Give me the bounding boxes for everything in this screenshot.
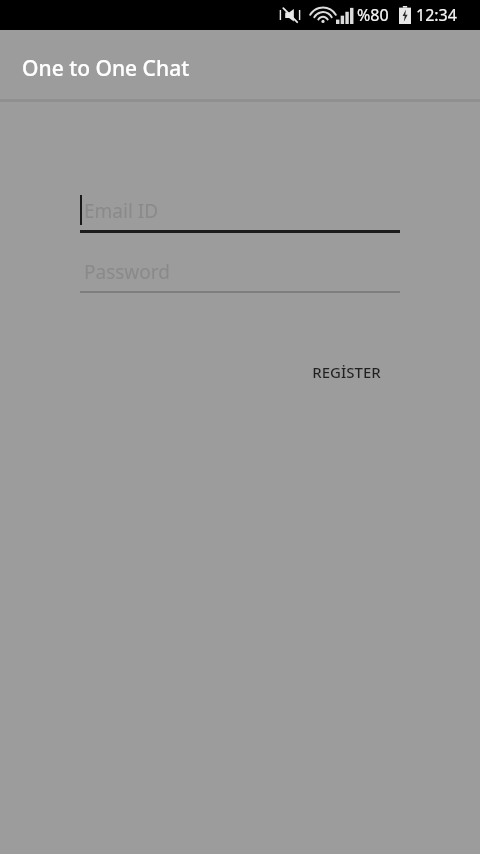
staticText: REGİSTER bbox=[312, 362, 381, 382]
staticText: Email ID bbox=[84, 198, 159, 224]
staticText: 12:34 bbox=[416, 4, 457, 26]
staticText: One to One Chat bbox=[22, 54, 190, 83]
button[interactable]: REGİSTER bbox=[292, 351, 400, 393]
button[interactable]: Password bbox=[80, 252, 400, 292]
button[interactable]: Email ID bbox=[80, 191, 400, 231]
staticText: Password bbox=[84, 259, 170, 285]
staticText: %80 bbox=[357, 4, 389, 26]
